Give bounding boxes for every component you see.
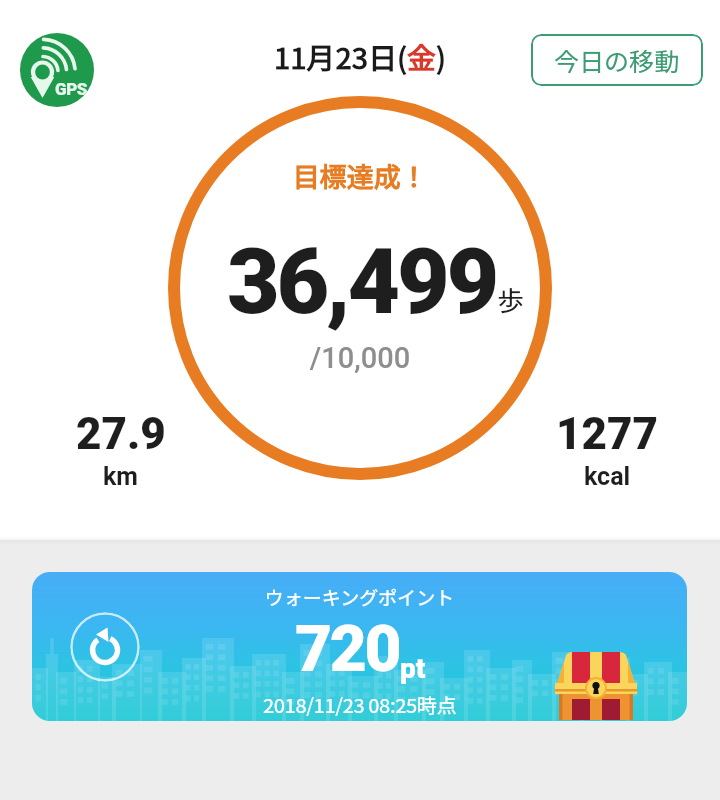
staticText: 27.9 — [76, 408, 166, 460]
staticText: 11月23日(金) — [0, 35, 720, 77]
button[interactable]: 今日の移動 — [531, 34, 703, 86]
button[interactable]: Refresh — [32, 572, 687, 721]
staticText: 目標達成！ — [0, 156, 720, 195]
staticText: 36,499 — [227, 229, 497, 336]
staticText: kcal — [584, 462, 631, 491]
staticText: 歩 — [497, 280, 524, 319]
staticText: 720 — [295, 612, 400, 687]
staticText: /10,000 — [0, 341, 720, 375]
button[interactable]: GPS — [20, 33, 94, 107]
staticText: ウォーキングポイント — [32, 583, 687, 611]
staticText: 2018/11/23 08:25時点 — [32, 690, 687, 719]
staticText: 今日の移動 — [554, 42, 680, 78]
staticText: 1277 — [556, 408, 659, 460]
button[interactable]: Refresh — [70, 612, 140, 682]
staticText: pt — [400, 652, 426, 685]
staticText: GPS — [55, 79, 88, 99]
staticText: km — [103, 462, 138, 491]
